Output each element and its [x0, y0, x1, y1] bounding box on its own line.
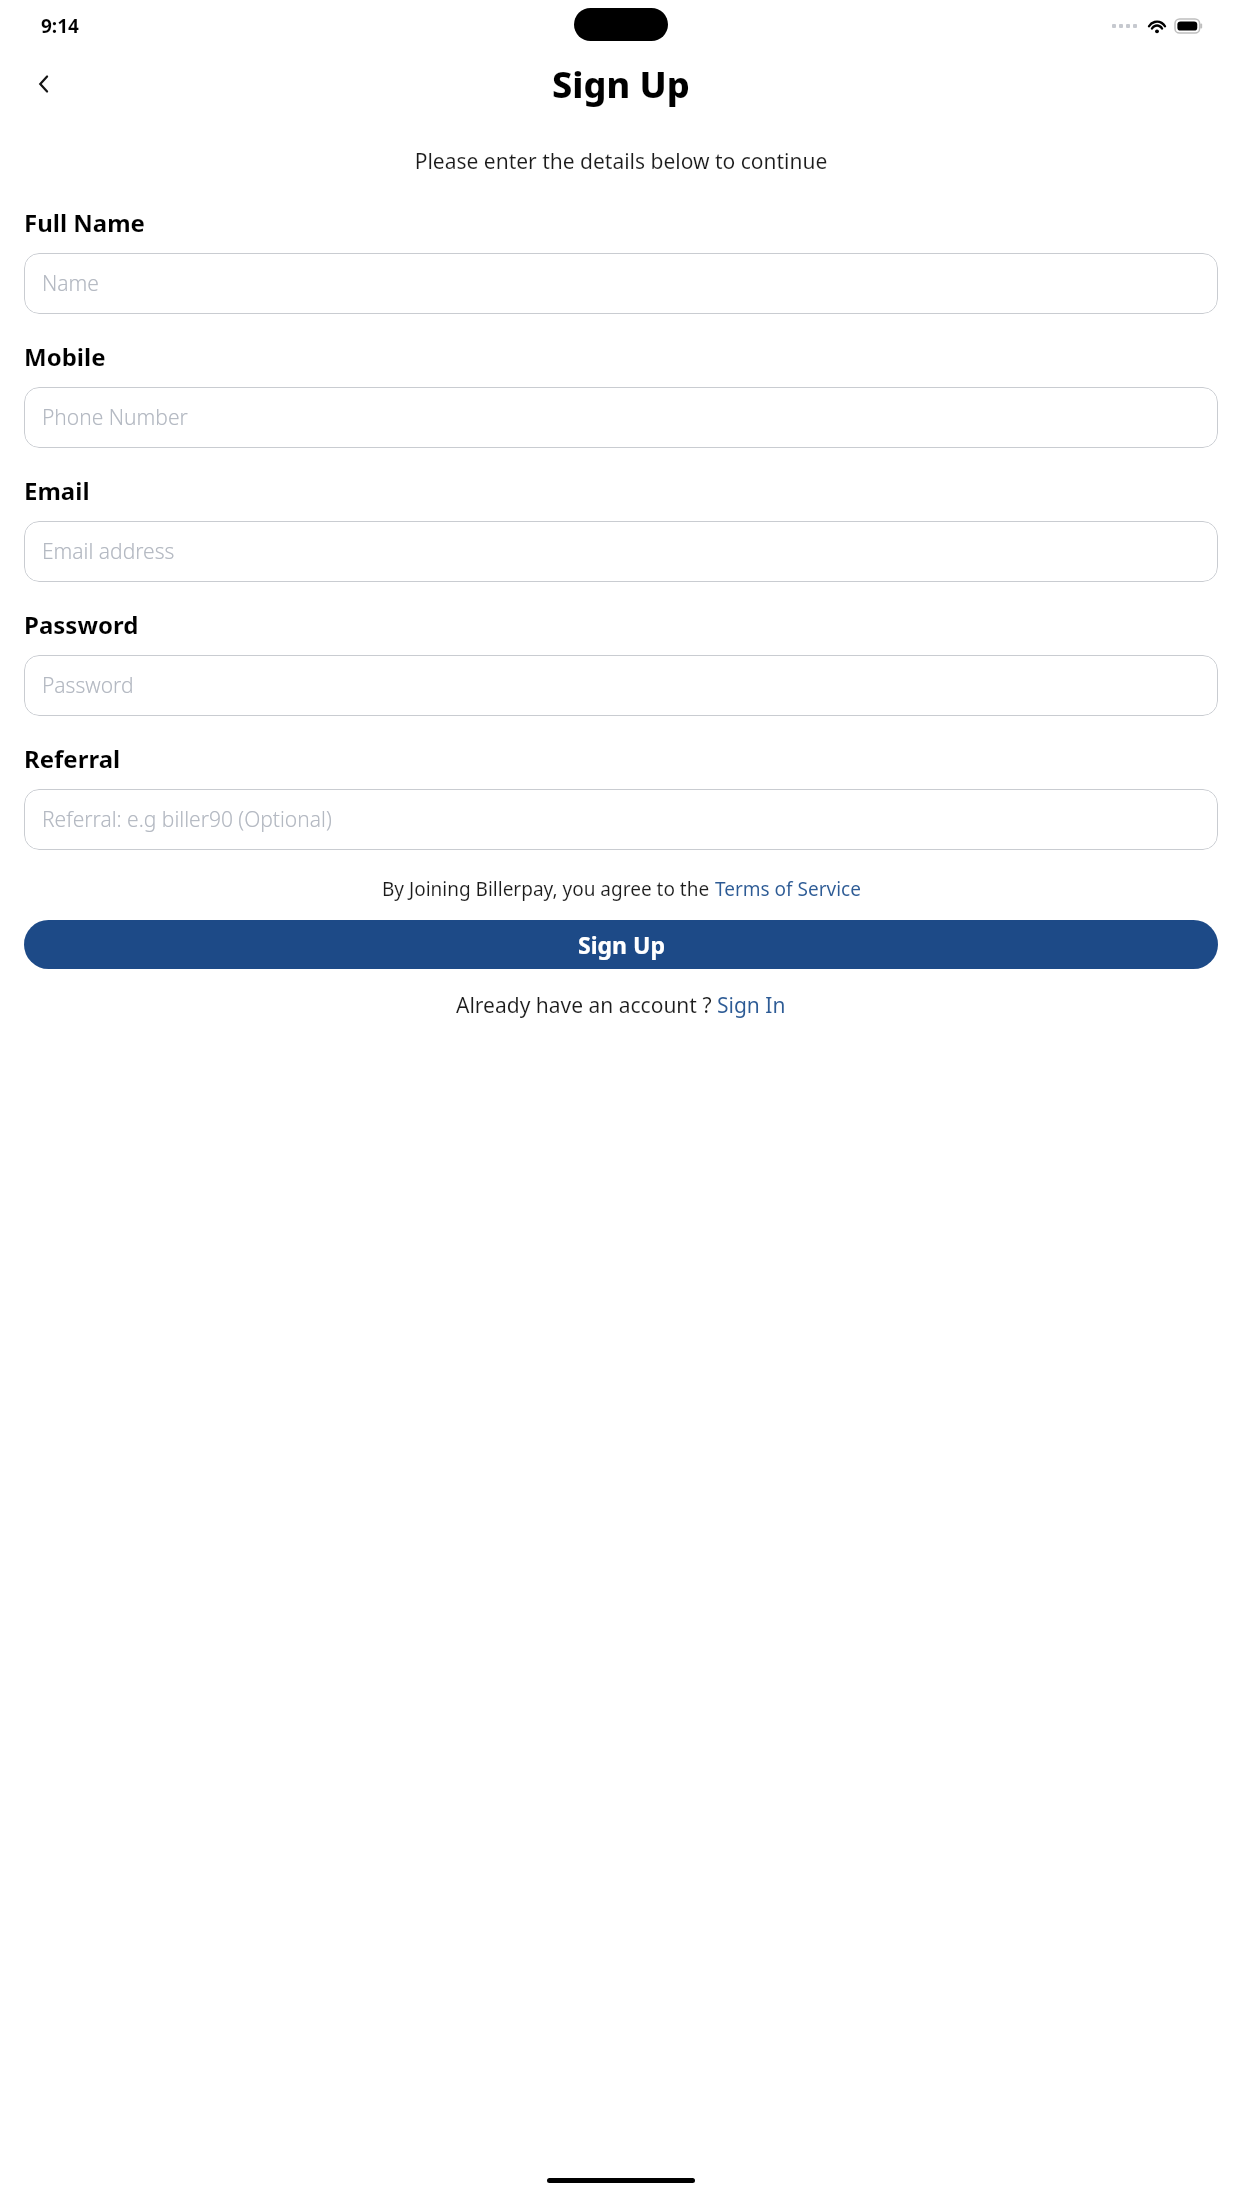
- staticText: Password: [24, 608, 139, 641]
- staticText: Name: [42, 269, 99, 298]
- button[interactable]: Back: [20, 60, 68, 108]
- staticText: Full Name: [24, 206, 145, 239]
- button[interactable]: Terms of Service: [715, 876, 861, 902]
- staticText: 9:14: [41, 13, 79, 39]
- button[interactable]: Phone Number: [24, 387, 1218, 448]
- button[interactable]: Email address: [24, 521, 1218, 582]
- button[interactable]: Sign In: [717, 991, 786, 1020]
- staticText: Terms of Service: [715, 876, 861, 902]
- staticText: Password: [42, 671, 134, 700]
- staticText: Mobile: [24, 340, 106, 373]
- staticText: Please enter the details below to contin…: [0, 147, 1242, 176]
- staticText: Already have an account ?: [456, 991, 717, 1020]
- staticText: Sign Up: [578, 929, 665, 960]
- staticText: Phone Number: [42, 403, 188, 432]
- staticText: Sign Up: [552, 60, 690, 109]
- staticText: Sign In: [717, 991, 786, 1020]
- staticText: Email address: [42, 537, 175, 566]
- staticText: Referral: e.g biller90 (Optional): [42, 805, 332, 834]
- staticText: Referral: [24, 742, 121, 775]
- button[interactable]: Name: [24, 253, 1218, 314]
- button[interactable]: Sign Up: [24, 920, 1218, 969]
- button[interactable]: Referral: e.g biller90 (Optional): [24, 789, 1218, 850]
- button[interactable]: Password: [24, 655, 1218, 716]
- staticText: By Joining Billerpay, you agree to the: [382, 876, 715, 902]
- staticText: Email: [24, 474, 90, 507]
